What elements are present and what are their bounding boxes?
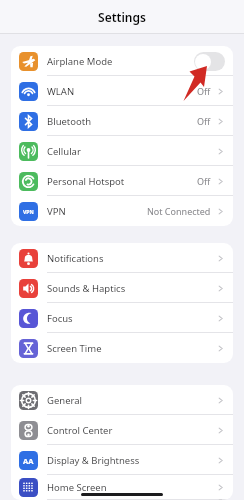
button[interactable]: AA — [11, 445, 233, 475]
staticText: Personal Hotspot — [47, 175, 125, 188]
button[interactable]: Home Screen — [11, 475, 233, 500]
button[interactable]: VPN — [11, 196, 233, 226]
button[interactable]: Notifications — [11, 243, 233, 273]
button[interactable]: Personal Hotspot — [11, 166, 233, 196]
staticText: Focus — [47, 312, 73, 325]
button[interactable]: Bluetooth — [11, 106, 233, 136]
staticText: General — [47, 394, 83, 407]
staticText: Home Screen — [47, 481, 107, 494]
staticText: VPN — [47, 205, 66, 218]
staticText: Sounds & Haptics — [47, 282, 126, 295]
button[interactable]: General — [11, 385, 233, 415]
staticText: Off — [197, 175, 211, 187]
staticText: VPN — [23, 208, 34, 215]
staticText: Off — [197, 85, 211, 97]
button[interactable]: WLAN — [11, 76, 233, 106]
staticText: Off — [197, 115, 211, 127]
button[interactable]: Sounds & Haptics — [11, 273, 233, 303]
button[interactable]: Focus — [11, 303, 233, 333]
staticText: Not Connected — [147, 205, 211, 217]
button[interactable]: Airplane Mode toggle, off — [194, 52, 225, 71]
button[interactable]: Cellular — [11, 136, 233, 166]
staticText: Cellular — [47, 145, 81, 158]
staticText: Settings — [98, 9, 146, 25]
staticText: Display & Brightness — [47, 454, 140, 467]
staticText: AA — [23, 456, 34, 466]
staticText: Bluetooth — [47, 115, 92, 128]
staticText: Screen Time — [47, 342, 102, 355]
button[interactable]: Control Center — [11, 415, 233, 445]
staticText: WLAN — [47, 85, 75, 98]
button[interactable]: Screen Time — [11, 333, 233, 363]
staticText: Notifications — [47, 252, 104, 265]
button[interactable]: Airplane Mode — [11, 46, 233, 76]
staticText: Control Center — [47, 424, 113, 437]
staticText: Airplane Mode — [47, 55, 113, 68]
